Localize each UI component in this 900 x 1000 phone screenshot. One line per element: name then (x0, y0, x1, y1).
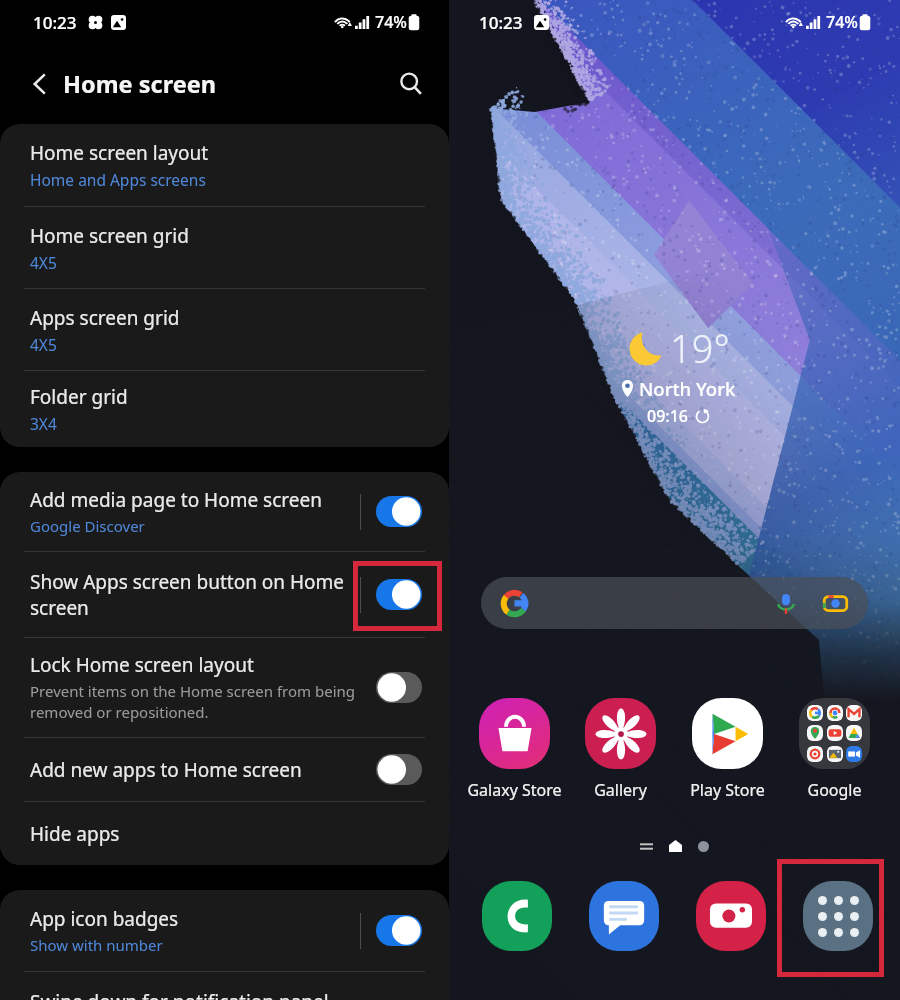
button[interactable]: Phone (482, 881, 552, 951)
staticText: Home and Apps screens (30, 169, 206, 190)
button[interactable]: Switch on (376, 579, 422, 610)
staticText: 74% (375, 11, 407, 33)
button[interactable]: Google (781, 698, 888, 801)
staticText: Add new apps to Home screen (30, 757, 302, 783)
staticText: 19° (670, 322, 730, 374)
staticText: Galaxy Store (467, 779, 562, 801)
button[interactable]: Home screen layout (0, 124, 449, 206)
staticText: Gallery (594, 779, 647, 801)
staticText: Folder grid (30, 384, 128, 410)
button[interactable]: 19° (453, 322, 900, 427)
staticText: Home screen (63, 68, 217, 100)
button[interactable]: App icon badges (0, 890, 449, 971)
button[interactable]: Messages (589, 881, 659, 951)
staticText: Prevent items on the Home screen from be… (30, 681, 364, 723)
button[interactable]: Swipe down for notification panel (0, 972, 449, 1000)
button[interactable]: Switch off (376, 754, 422, 785)
staticText: Home screen layout (30, 140, 209, 166)
button[interactable]: Switch on (376, 496, 422, 527)
button[interactable]: Lock Home screen layout (0, 638, 449, 737)
button[interactable]: Navigate up (18, 62, 62, 106)
button[interactable]: Home screen grid (0, 207, 449, 288)
staticText: Show Apps screen button on Home screen (30, 569, 351, 621)
staticText: 74% (826, 11, 858, 33)
button[interactable]: Apps screen (803, 881, 873, 951)
button[interactable]: Camera (696, 881, 766, 951)
button[interactable]: Play Store (674, 698, 781, 801)
button[interactable]: Folder grid (0, 371, 449, 447)
button[interactable]: Search Google (481, 577, 868, 629)
staticText: Google Discover (30, 516, 145, 536)
button[interactable]: Galaxy Store (461, 698, 567, 801)
staticText: Add media page to Home screen (30, 487, 322, 513)
button[interactable]: Apps screen grid (0, 289, 449, 370)
button[interactable]: Show Apps screen button on Home screen (0, 552, 449, 637)
staticText: North York (639, 376, 736, 401)
button[interactable]: Hide apps (0, 802, 449, 865)
staticText: 09:16 (647, 405, 688, 427)
staticText: Play Store (690, 779, 765, 801)
button[interactable]: Search (389, 62, 433, 106)
button[interactable]: Switch off (376, 672, 422, 703)
staticText: 4X5 (30, 334, 57, 355)
button[interactable]: Switch on (376, 915, 422, 946)
staticText: 3X4 (30, 413, 57, 434)
button[interactable]: Add media page to Home screen (0, 472, 449, 551)
staticText: Hide apps (30, 821, 120, 847)
staticText: Google (807, 779, 862, 801)
staticText: 10:23 (33, 11, 77, 34)
staticText: Apps screen grid (30, 305, 180, 331)
staticText: Swipe down for notification panel (30, 989, 329, 1000)
staticText: App icon badges (30, 906, 179, 932)
button[interactable]: Add new apps to Home screen (0, 738, 449, 801)
staticText: 4X5 (30, 252, 57, 273)
staticText: Show with number (30, 935, 163, 955)
staticText: 10:23 (479, 11, 523, 34)
button[interactable]: Gallery (567, 698, 674, 801)
staticText: Lock Home screen layout (30, 652, 254, 678)
staticText: Home screen grid (30, 223, 189, 249)
